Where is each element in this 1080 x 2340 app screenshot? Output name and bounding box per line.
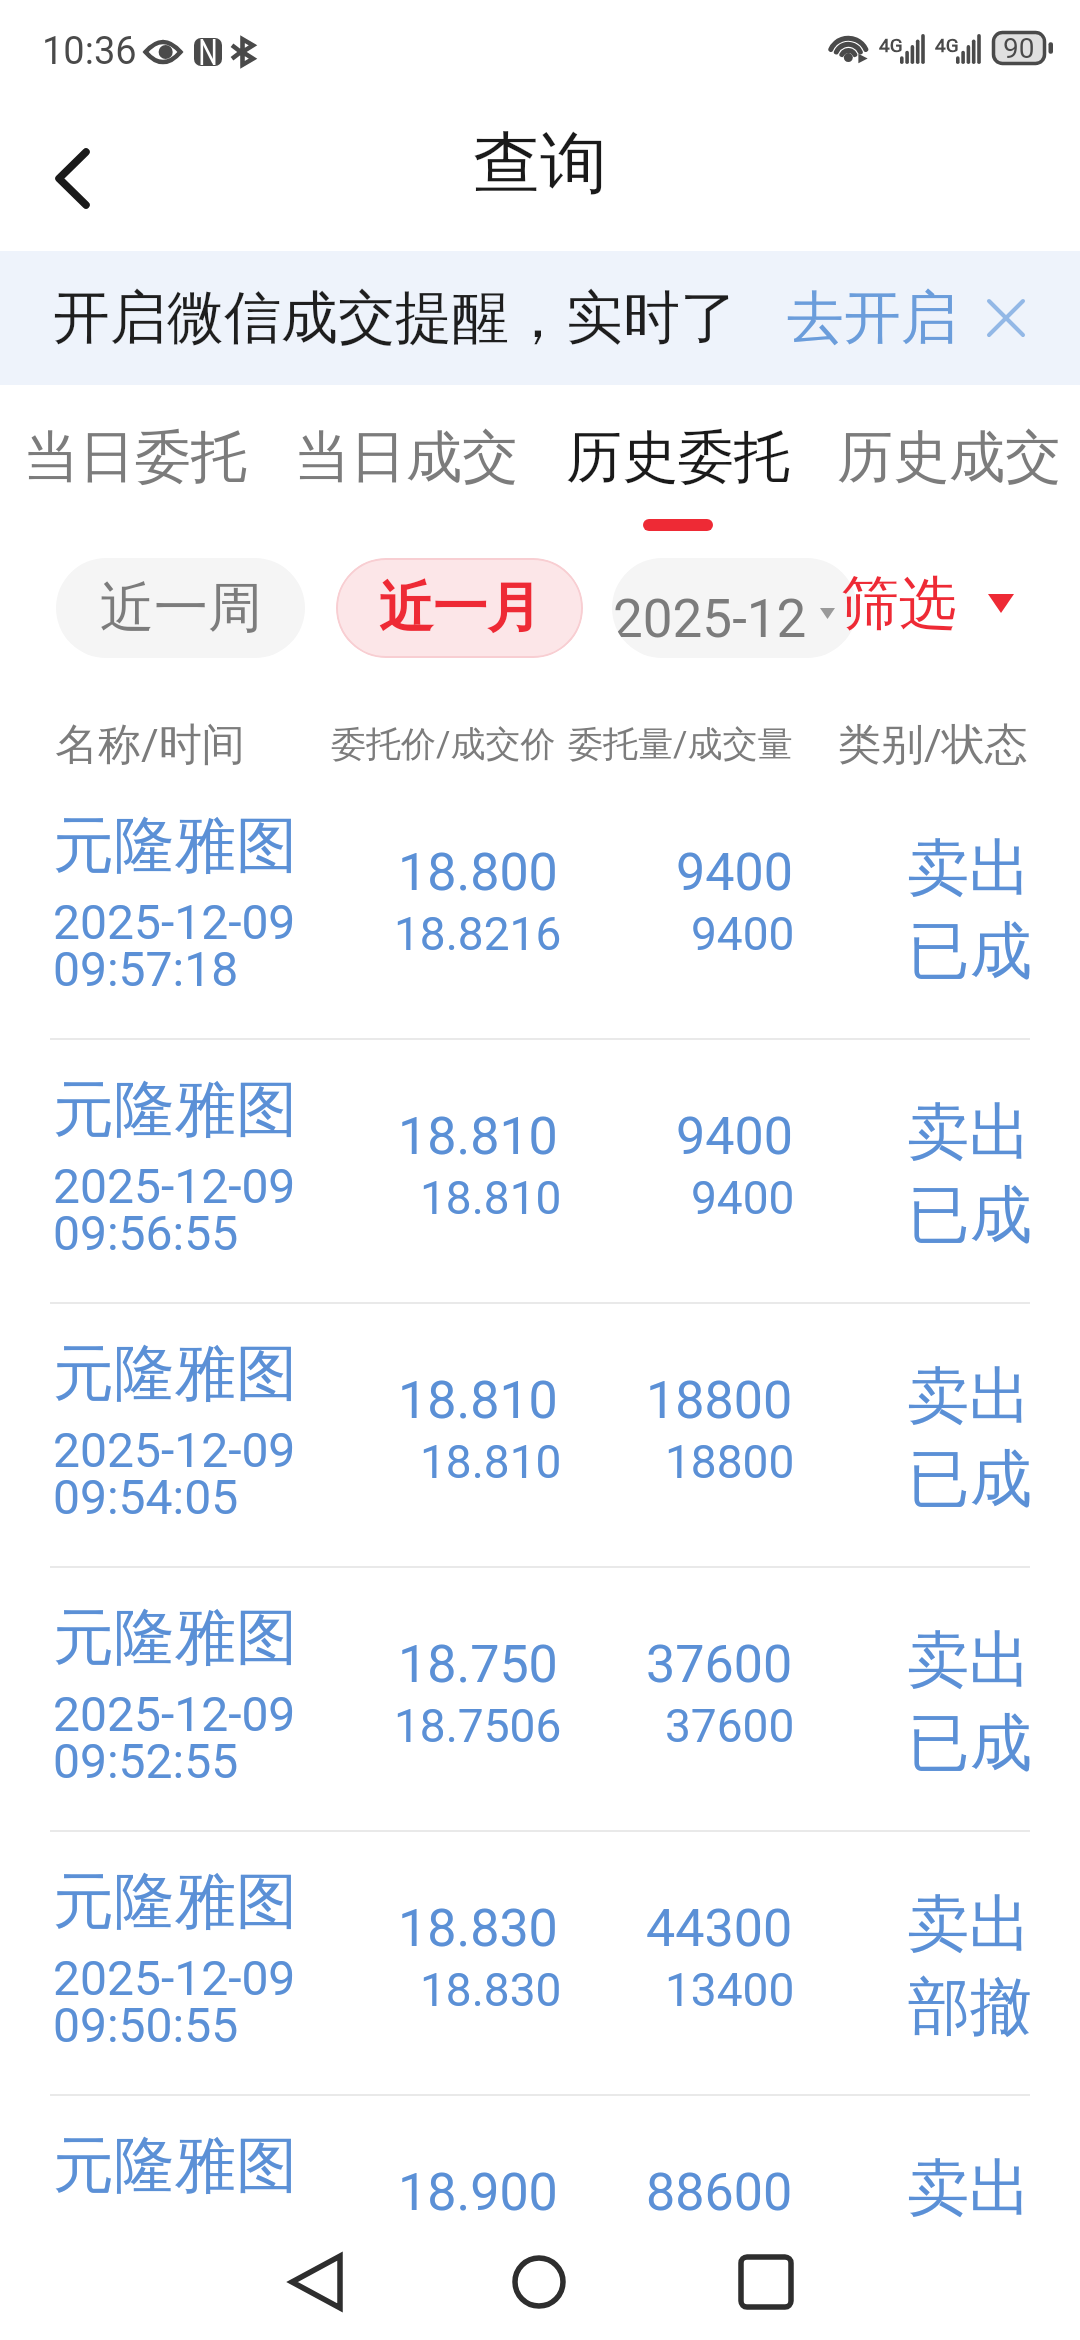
staticText: 18800 <box>646 1370 793 1431</box>
staticText: 18.900 <box>398 2162 558 2223</box>
button[interactable]: 近一周 <box>56 558 305 658</box>
staticText: 18.800 <box>398 842 558 903</box>
staticText: 13400 <box>665 1963 795 2017</box>
button[interactable]: 历史成交 <box>831 385 1067 519</box>
staticText: 已成 <box>908 912 1032 990</box>
staticText: 88600 <box>646 2162 793 2223</box>
button[interactable]: 元隆雅图 <box>0 1304 1080 1566</box>
button[interactable]: Back <box>32 132 112 224</box>
button[interactable]: 元隆雅图 <box>0 1568 1080 1830</box>
staticText: 近一周 <box>100 574 262 642</box>
staticText: 2025-12-09 <box>53 1422 296 1478</box>
button[interactable]: 近一月 <box>336 558 583 658</box>
staticText: 2025-12-09 <box>53 1686 296 1742</box>
staticText: 历史委托 <box>566 422 790 493</box>
button[interactable]: 当日成交 <box>288 385 524 519</box>
staticText: 元隆雅图 <box>53 2127 297 2204</box>
staticText: 18.810 <box>420 1171 562 1225</box>
staticText: 已成 <box>908 1176 1032 1254</box>
staticText: 90 <box>1003 32 1035 65</box>
button[interactable]: 元隆雅图 <box>0 776 1080 1038</box>
button[interactable]: 筛选 <box>841 558 1014 648</box>
staticText: 18.8216 <box>394 907 562 961</box>
staticText: 卖出 <box>907 1093 1031 1171</box>
button[interactable]: Home <box>429 2224 649 2340</box>
staticText: 历史成交 <box>837 422 1061 493</box>
staticText: 元隆雅图 <box>53 807 297 884</box>
button[interactable]: 元隆雅图 <box>0 1040 1080 1302</box>
staticText: 9400 <box>676 842 793 903</box>
staticText: 10:36 <box>42 29 137 74</box>
staticText: 09:50:55 <box>53 1997 239 2053</box>
staticText: 18.750 <box>398 1634 558 1695</box>
staticText: 18.7506 <box>394 1699 562 1753</box>
button[interactable]: 2025-12 <box>612 558 857 658</box>
staticText: 元隆雅图 <box>53 1599 297 1676</box>
button[interactable]: Close banner <box>978 290 1034 346</box>
staticText: 部撤 <box>908 1968 1032 2046</box>
staticText: 2025-12 <box>613 588 807 650</box>
staticText: 09:57:18 <box>53 941 239 997</box>
staticText: 卖出 <box>907 829 1031 907</box>
staticText: 已成 <box>908 1440 1032 1518</box>
button[interactable]: 历史委托 <box>560 385 796 531</box>
staticText: 09:56:55 <box>53 1205 239 1261</box>
button[interactable]: 元隆雅图 <box>0 2096 1080 2340</box>
staticText: 查询 <box>473 121 607 205</box>
staticText: 2025-12-09 <box>53 1950 296 2006</box>
staticText: 元隆雅图 <box>53 1335 297 1412</box>
staticText: 37600 <box>646 1634 793 1695</box>
staticText: 4G <box>935 34 959 56</box>
staticText: 09:52:55 <box>53 1733 239 1789</box>
staticText: 2025-12-09 <box>53 1158 296 1214</box>
staticText: 卖出 <box>907 1621 1031 1699</box>
staticText: 卖出 <box>907 1357 1031 1435</box>
staticText: 卖出 <box>907 2149 1031 2227</box>
staticText: 类别/状态 <box>838 718 1028 772</box>
staticText: 18.830 <box>398 1898 558 1959</box>
button[interactable]: Recents <box>656 2224 876 2340</box>
staticText: 88600 <box>665 2227 795 2281</box>
button[interactable]: 当日委托 <box>17 385 253 519</box>
staticText: 委托量/成交量 <box>568 722 793 766</box>
staticText: 09:54:05 <box>53 1469 239 1525</box>
staticText: 18800 <box>665 1435 795 1489</box>
button[interactable]: 元隆雅图 <box>0 1832 1080 2094</box>
staticText: 开启微信成交提醒，实时了 <box>53 282 737 354</box>
staticText: 当日委托 <box>23 422 247 493</box>
staticText: 37600 <box>665 1699 795 1753</box>
staticText: 44300 <box>646 1898 793 1959</box>
staticText: 已成 <box>908 1704 1032 1782</box>
button[interactable]: 去开启 <box>787 282 958 354</box>
staticText: 18.810 <box>398 1370 558 1431</box>
staticText: 18.810 <box>420 1435 562 1489</box>
staticText: 9400 <box>691 907 795 961</box>
staticText: 18.830 <box>420 1963 562 2017</box>
staticText: 卖出 <box>907 1885 1031 1963</box>
staticText: 名称/时间 <box>55 718 245 772</box>
staticText: 元隆雅图 <box>53 1863 297 1940</box>
button[interactable]: Back <box>206 2224 426 2340</box>
staticText: 18.900 <box>420 2227 562 2281</box>
staticText: 4G <box>879 34 903 56</box>
staticText: 元隆雅图 <box>53 1071 297 1148</box>
staticText: 近一月 <box>379 574 541 642</box>
staticText: 18.810 <box>398 1106 558 1167</box>
staticText: 筛选 <box>841 567 957 640</box>
staticText: 当日成交 <box>294 422 518 493</box>
staticText: 9400 <box>691 1171 795 1225</box>
staticText: 2025-12-09 <box>53 894 296 950</box>
staticText: 委托价/成交价 <box>331 722 556 766</box>
staticText: 9400 <box>676 1106 793 1167</box>
